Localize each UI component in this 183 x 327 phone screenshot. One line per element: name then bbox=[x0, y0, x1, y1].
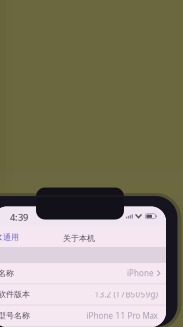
staticText: 关于本机 bbox=[63, 233, 95, 243]
staticText: iPhone bbox=[127, 268, 154, 278]
staticText: iPhone 11 Pro Max bbox=[86, 310, 157, 321]
staticText: 型号名称 bbox=[0, 311, 30, 320]
staticText: 名称 bbox=[0, 268, 14, 278]
staticText: 软件版本 bbox=[0, 289, 30, 299]
button[interactable]: 名称 bbox=[0, 263, 166, 283]
staticText: 4:39 bbox=[10, 211, 28, 223]
button[interactable]: 通用 bbox=[0, 227, 25, 247]
staticText: 13.2 (17B5059g) bbox=[94, 289, 157, 300]
staticText: 通用 bbox=[3, 232, 19, 242]
